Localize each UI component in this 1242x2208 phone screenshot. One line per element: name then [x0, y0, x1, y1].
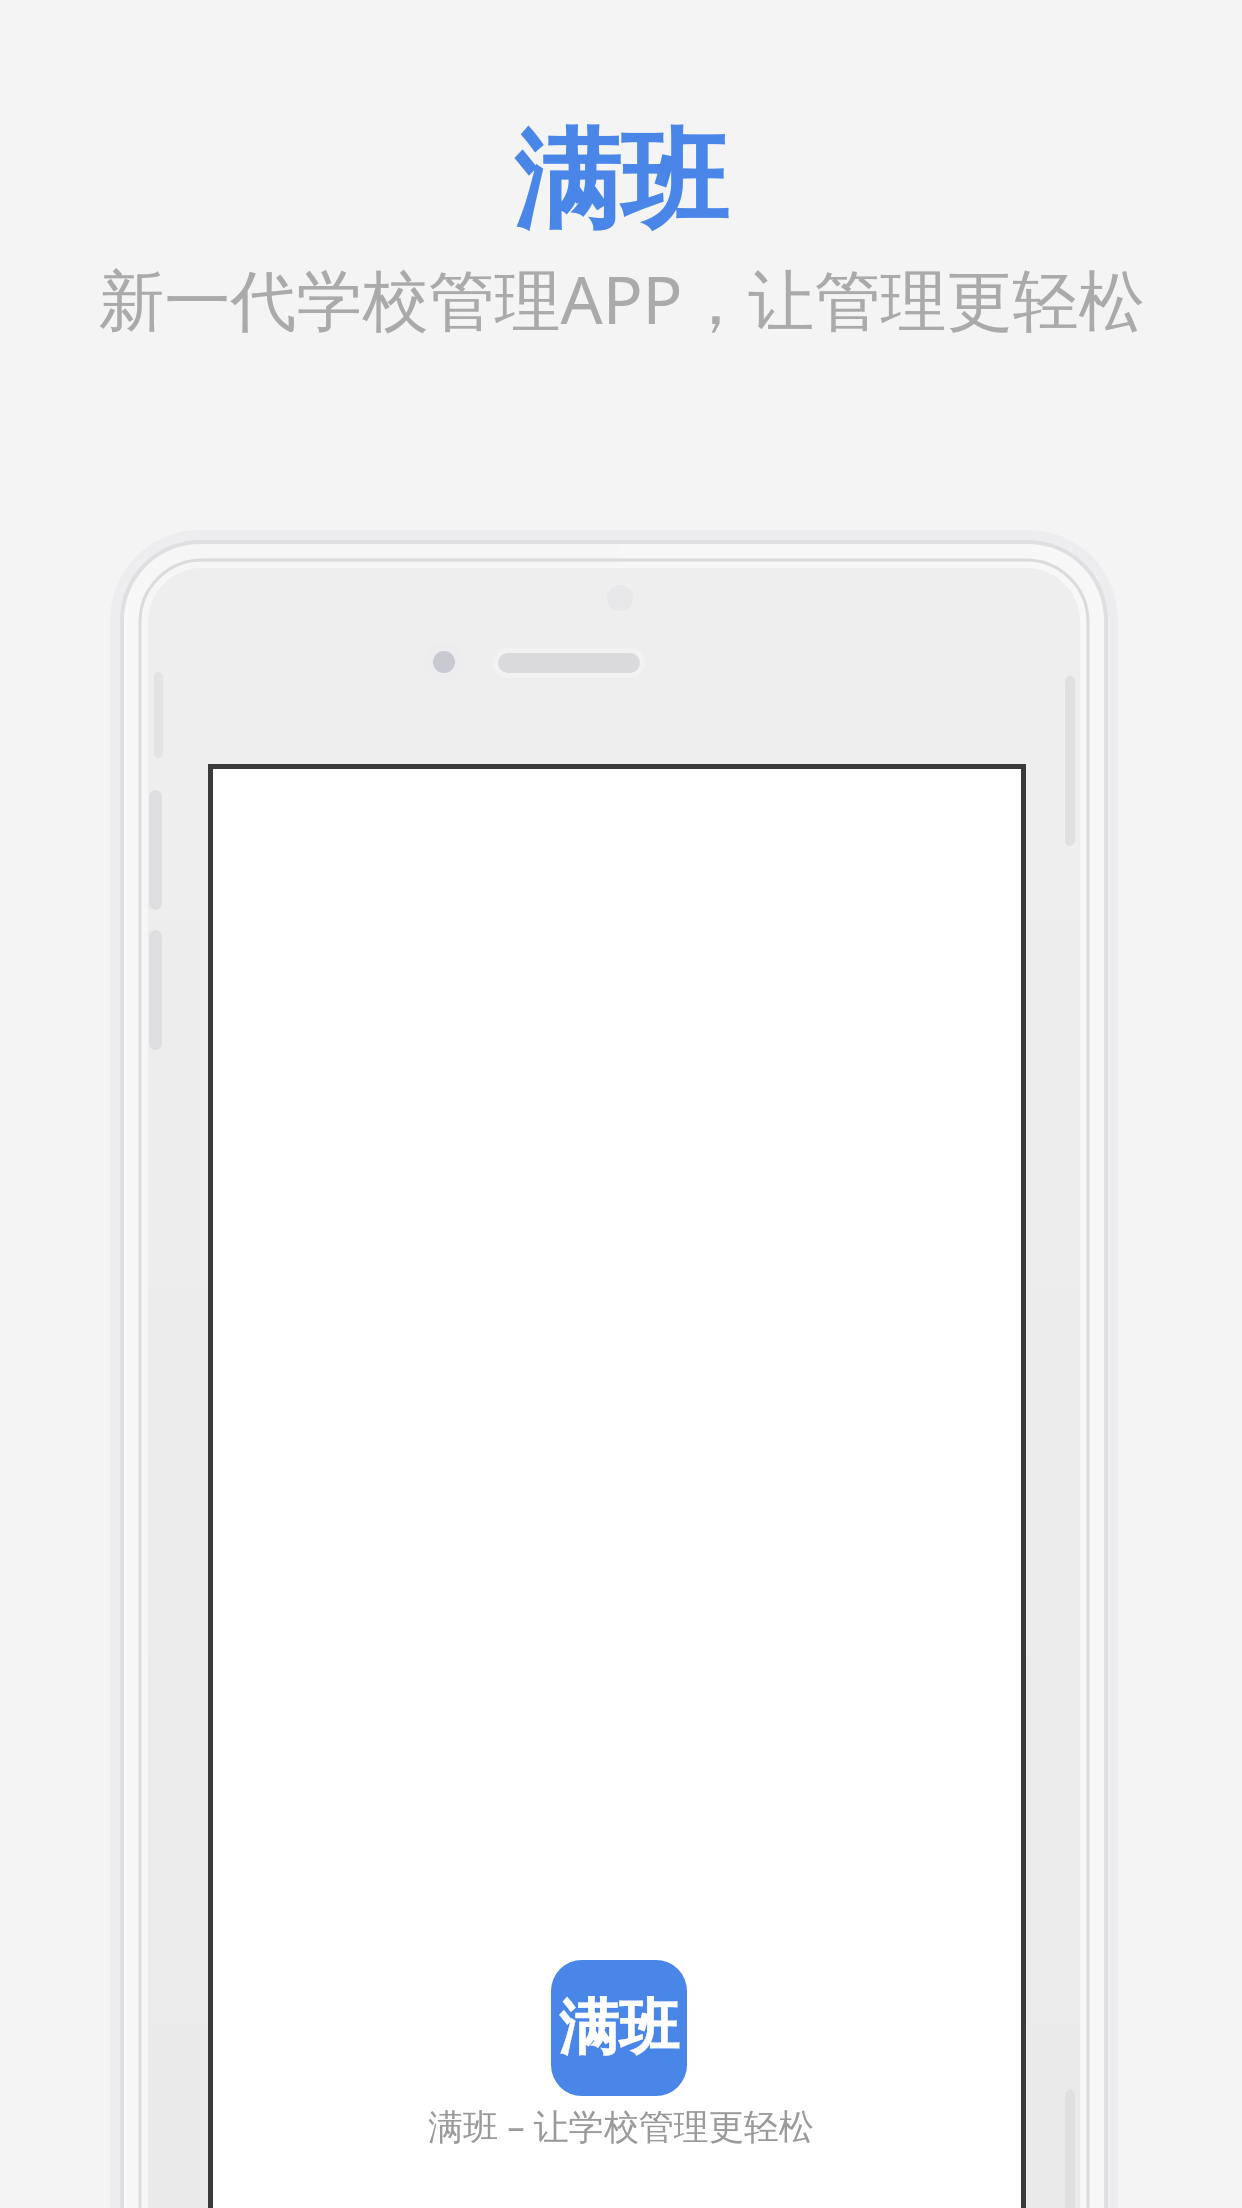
button[interactable]: 满班 应用图标	[551, 1960, 687, 2096]
staticText: 满班	[514, 114, 728, 249]
staticText: 新一代学校管理APP，让管理更轻松	[98, 253, 1145, 343]
staticText: 满班	[559, 1990, 679, 2066]
staticText: 满班 – 让学校管理更轻松	[428, 2102, 814, 2150]
